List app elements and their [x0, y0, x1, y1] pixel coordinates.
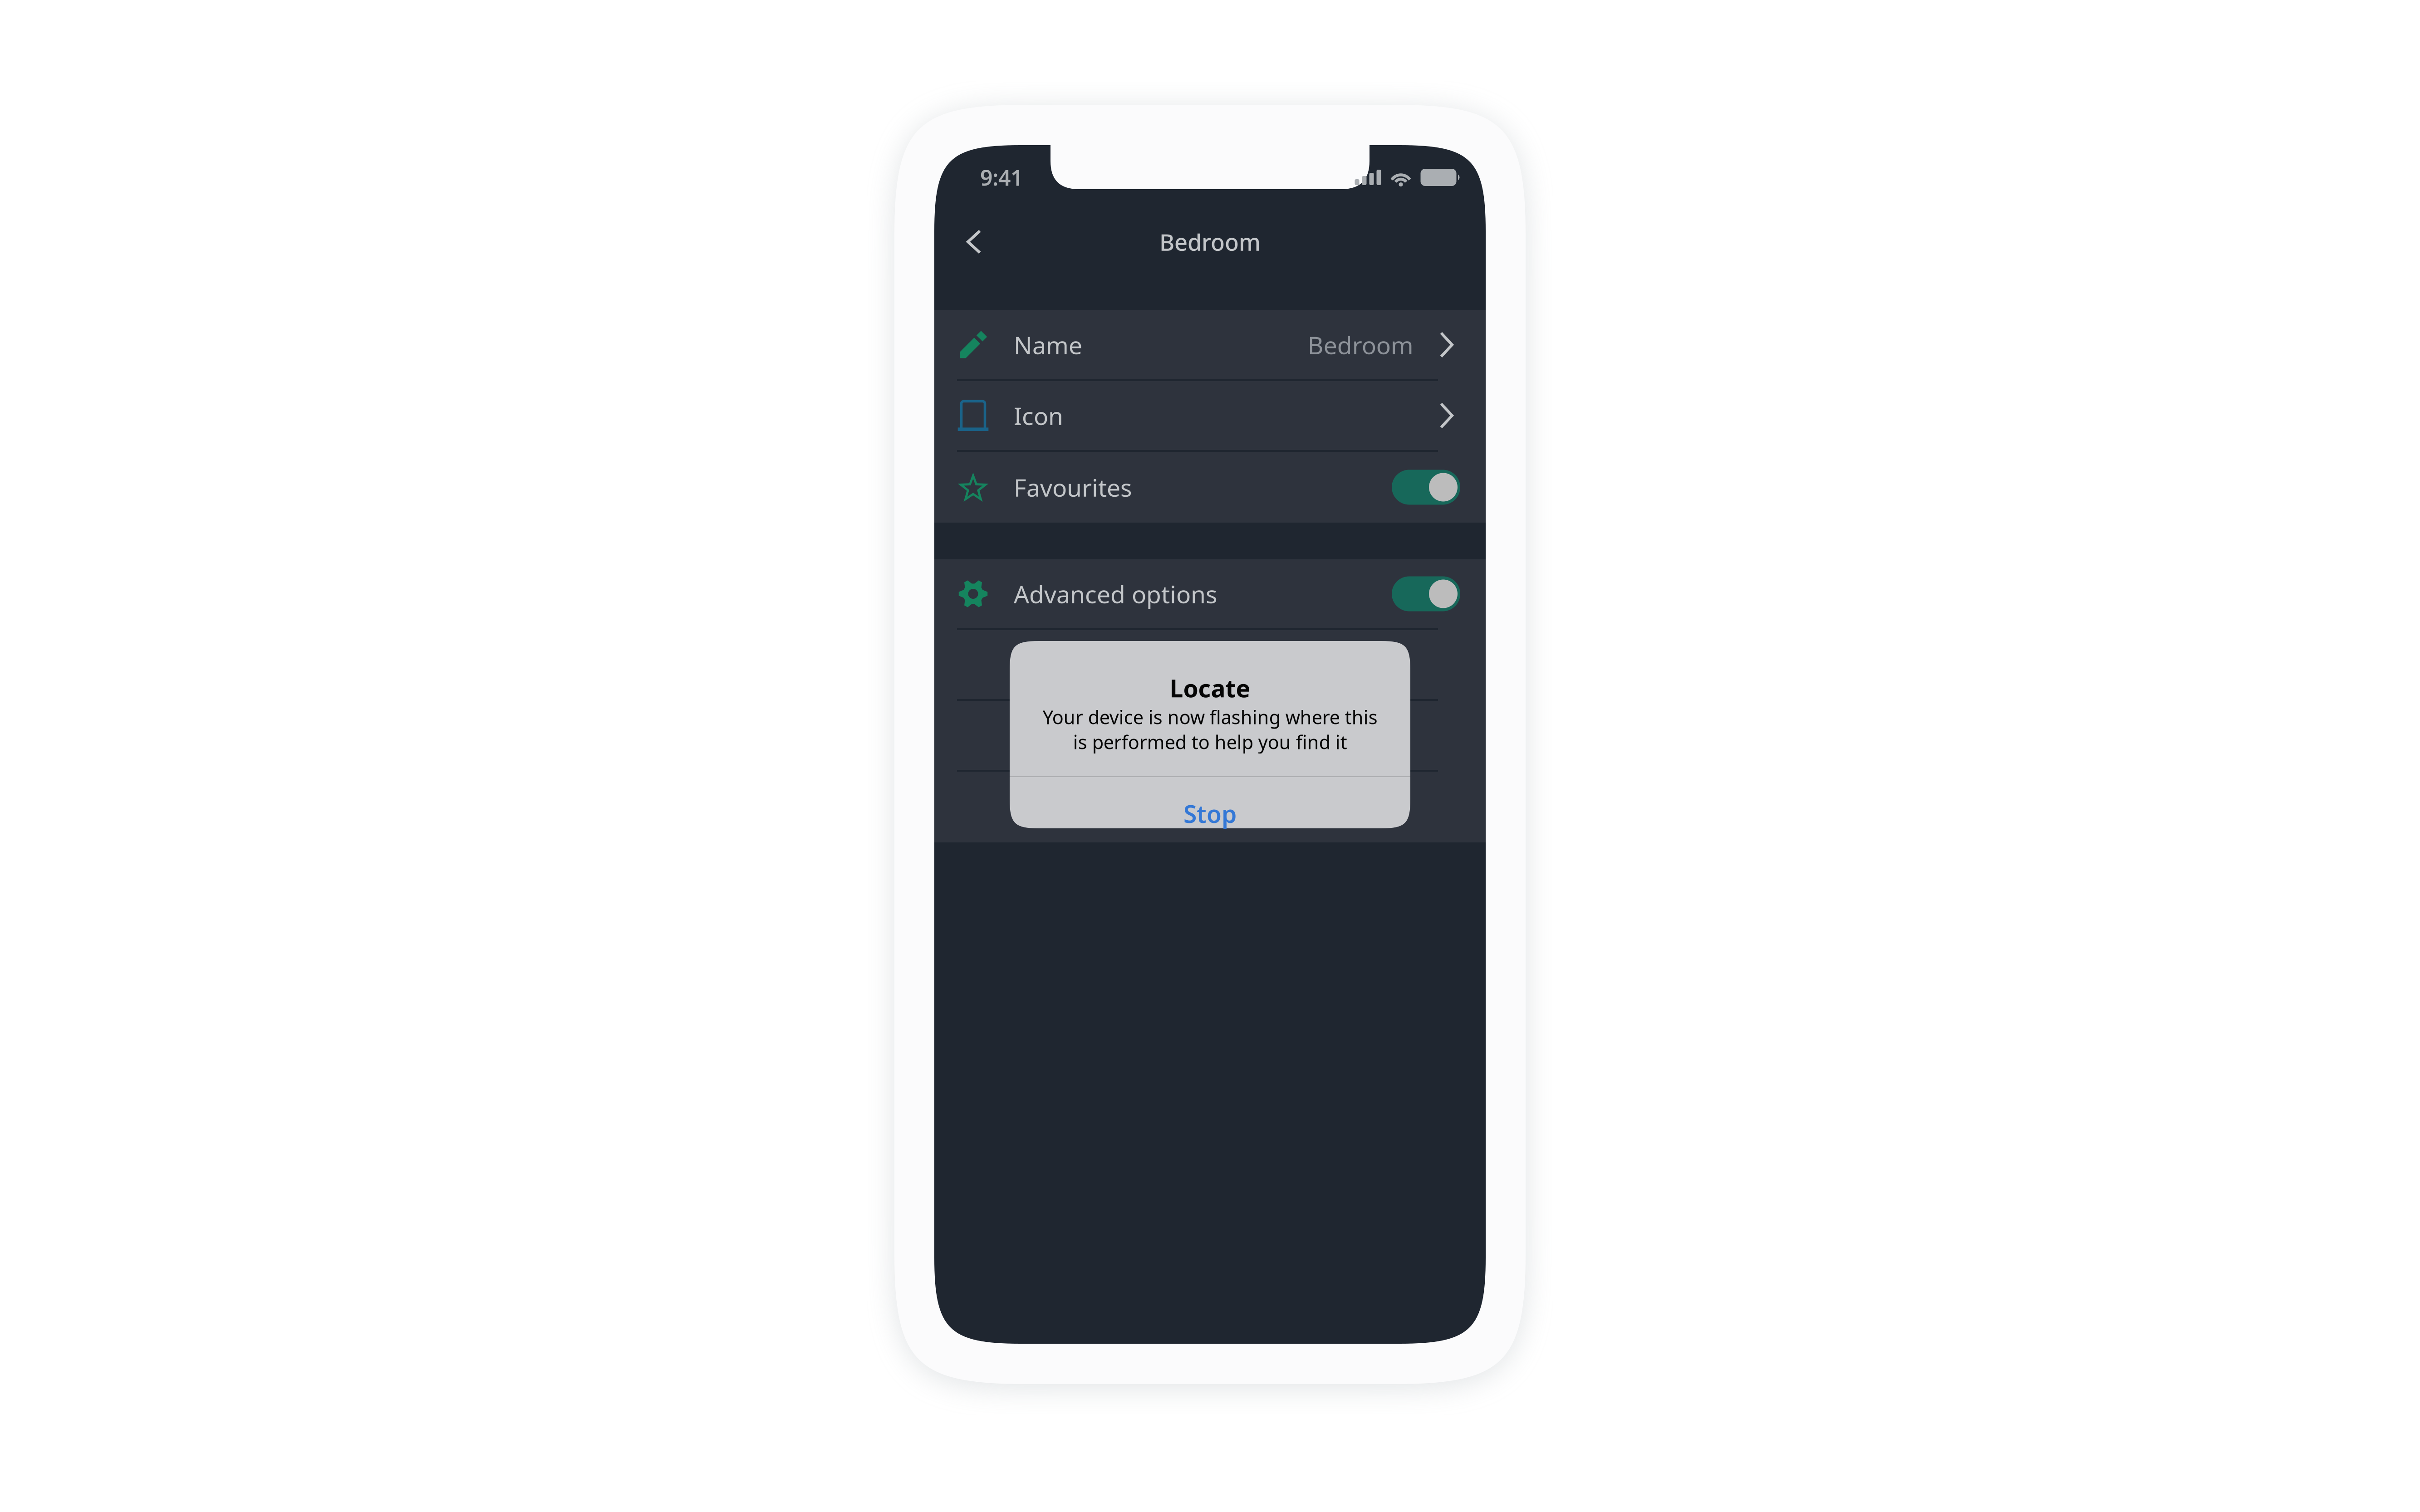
button[interactable]: Favourites: [934, 452, 1486, 523]
button[interactable]: Name: [934, 310, 1486, 381]
button[interactable]: Stop: [1010, 777, 1410, 827]
staticText: Bedroom: [1308, 329, 1413, 361]
button[interactable]: Back: [934, 210, 1004, 274]
staticText: Locate: [1170, 672, 1250, 704]
staticText: Your device is now flashing where this i…: [1043, 705, 1377, 754]
staticText: Stop: [1183, 797, 1237, 830]
staticText: Favourites: [1014, 471, 1132, 503]
staticText: Bedroom: [1159, 227, 1261, 257]
staticText: 9:41: [980, 163, 1023, 192]
staticText: Icon: [1014, 399, 1063, 432]
staticText: Name: [1014, 329, 1082, 361]
button[interactable]: Icon: [934, 381, 1486, 452]
button[interactable]: Advanced options: [934, 559, 1486, 630]
button[interactable]: [934, 772, 1486, 842]
staticText: Advanced options: [1014, 578, 1217, 610]
button[interactable]: [934, 630, 1486, 701]
button[interactable]: [934, 701, 1486, 772]
